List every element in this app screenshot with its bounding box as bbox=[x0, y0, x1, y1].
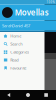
staticText: Favourite bbox=[10, 65, 26, 71]
button[interactable]: Categories bbox=[0, 48, 44, 56]
button[interactable]: Home bbox=[19, 90, 37, 100]
staticText: Home bbox=[10, 33, 21, 39]
staticText: Categories bbox=[10, 49, 29, 55]
button[interactable]: Favourite bbox=[0, 64, 44, 72]
button[interactable]: Recent apps bbox=[37, 90, 56, 100]
staticText: 100% bbox=[46, 0, 54, 4]
staticText: Search bbox=[10, 41, 22, 47]
button[interactable]: Read bbox=[0, 56, 44, 64]
staticText: SarahDaniel 457 bbox=[2, 23, 30, 28]
staticText: Read bbox=[10, 57, 18, 63]
button[interactable]: Profile bbox=[2, 7, 13, 18]
button[interactable]: Home bbox=[0, 32, 44, 40]
button[interactable]: Back bbox=[0, 90, 19, 100]
staticText: Movellas bbox=[15, 7, 49, 18]
button[interactable]: Search bbox=[0, 40, 44, 48]
